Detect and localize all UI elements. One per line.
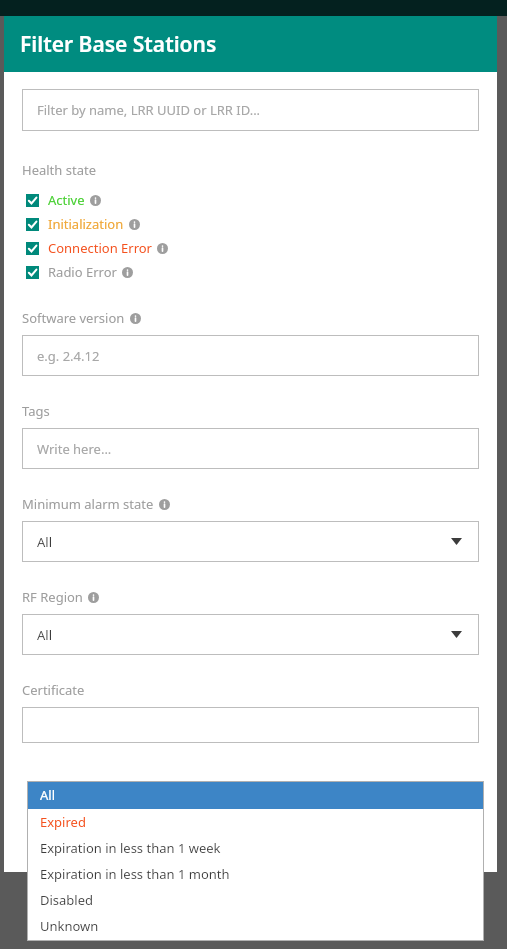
- other: More information: [88, 592, 99, 603]
- staticText: Software version: [22, 309, 125, 327]
- button[interactable]: e.g. 2.4.12: [22, 335, 479, 376]
- other: More information: [130, 313, 141, 324]
- button[interactable]: Filter by name, LRR UUID or LRR ID...: [22, 89, 479, 131]
- button[interactable]: Expiration in less than 1 month: [27, 861, 484, 887]
- button[interactable]: Disabled: [27, 887, 484, 913]
- other: More information: [129, 219, 140, 230]
- button[interactable]: All: [22, 614, 479, 655]
- button[interactable]: Active: [22, 188, 479, 212]
- staticText: Health state: [22, 161, 96, 179]
- button[interactable]: Expiration in less than 1 week: [27, 835, 484, 861]
- staticText: Disabled: [40, 891, 94, 909]
- staticText: Unknown: [40, 917, 99, 935]
- staticText: RF Region: [22, 588, 83, 606]
- button[interactable]: All: [22, 521, 479, 562]
- staticText: Minimum alarm state: [22, 495, 154, 513]
- staticText: Write here...: [37, 440, 112, 458]
- staticText: Radio Error: [48, 263, 117, 281]
- button[interactable]: Radio Error: [22, 260, 479, 284]
- staticText: All: [40, 786, 56, 804]
- staticText: All: [37, 533, 53, 551]
- staticText: Expiration in less than 1 month: [40, 865, 230, 883]
- button[interactable]: All: [27, 781, 484, 809]
- button[interactable]: Expired: [27, 809, 484, 835]
- staticText: Expired: [40, 813, 86, 831]
- staticText: Filter Base Stations: [20, 30, 217, 59]
- staticText: Initialization: [48, 215, 124, 233]
- staticText: Expiration in less than 1 week: [40, 839, 221, 857]
- button[interactable]: Connection Error: [22, 236, 479, 260]
- other: More information: [159, 499, 170, 510]
- staticText: Active: [48, 191, 85, 209]
- staticText: Tags: [22, 402, 50, 420]
- button[interactable]: Write here...: [22, 428, 479, 469]
- button[interactable]: [22, 707, 479, 743]
- staticText: Connection Error: [48, 239, 152, 257]
- other: More information: [157, 243, 168, 254]
- other: More information: [90, 195, 101, 206]
- staticText: e.g. 2.4.12: [37, 347, 100, 365]
- button[interactable]: Unknown: [27, 913, 484, 939]
- staticText: Filter by name, LRR UUID or LRR ID...: [37, 101, 261, 119]
- button[interactable]: Initialization: [22, 212, 479, 236]
- staticText: Certificate: [22, 681, 85, 699]
- staticText: All: [37, 626, 53, 644]
- other: More information: [122, 267, 133, 278]
